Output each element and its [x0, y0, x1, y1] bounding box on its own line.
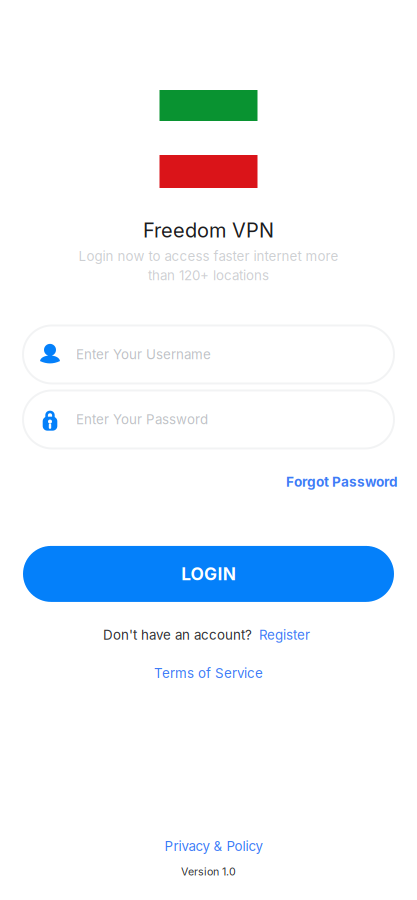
button[interactable]: LOGIN: [23, 546, 394, 602]
staticText: Enter Your Username: [76, 346, 211, 362]
button[interactable]: Terms of Service: [146, 659, 271, 687]
button[interactable]: Privacy & Policy: [153, 832, 263, 860]
staticText: Enter Your Password: [76, 411, 208, 427]
button[interactable]: Enter Your Password: [23, 390, 394, 448]
button[interactable]: Forgot Password: [282, 467, 402, 496]
button[interactable]: Enter Your Username: [23, 325, 394, 383]
staticText: Freedom VPN: [143, 218, 274, 242]
staticText: Privacy & Policy: [164, 838, 262, 854]
staticText: Login now to access faster internet more: [78, 248, 338, 264]
staticText: Terms of Service: [154, 665, 263, 681]
staticText: Register: [259, 627, 310, 643]
staticText: LOGIN: [181, 563, 236, 584]
staticText: than 120+ locations: [148, 267, 269, 283]
button[interactable]: Register: [255, 621, 314, 649]
staticText: Version 1.0: [181, 865, 236, 878]
staticText: Don't have an account?: [103, 627, 252, 643]
staticText: Forgot Password: [286, 473, 398, 490]
